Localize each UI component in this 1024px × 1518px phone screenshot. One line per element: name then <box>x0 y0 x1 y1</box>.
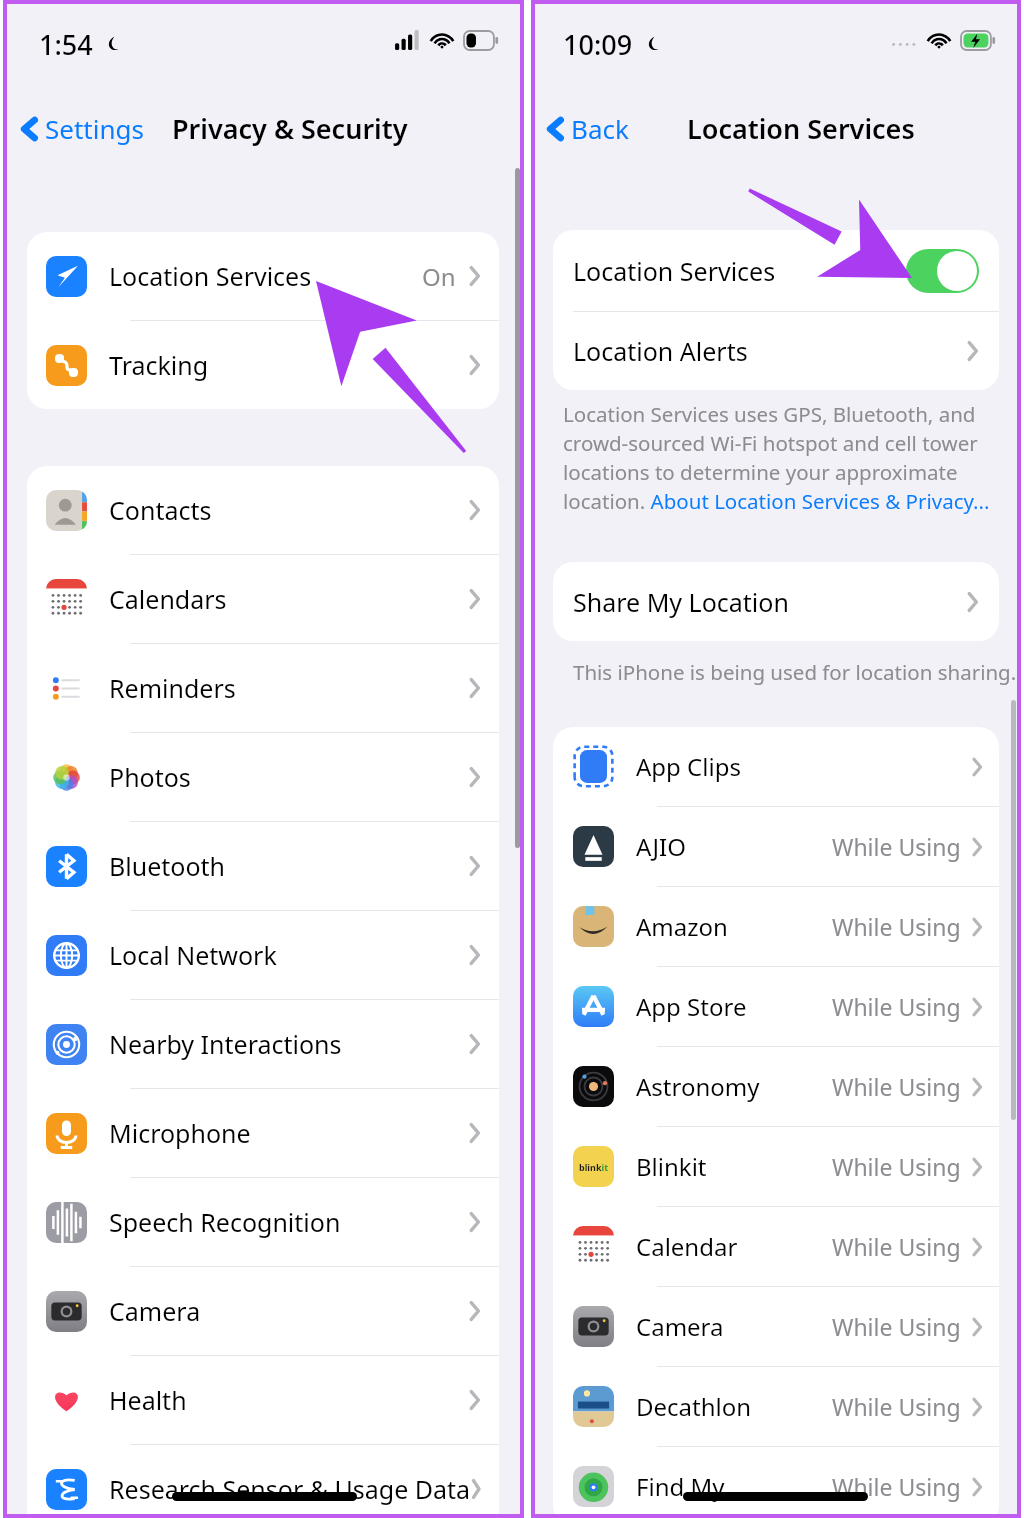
button[interactable]: Reminders <box>27 644 499 732</box>
staticText: Camera <box>109 1294 201 1328</box>
button[interactable]: Location Services toggle, on <box>906 249 979 293</box>
button[interactable]: Calendars <box>27 555 499 643</box>
staticText: App Store <box>636 990 747 1023</box>
button[interactable]: Find My <box>553 1447 999 1518</box>
button[interactable]: Nearby Interactions <box>27 1000 499 1088</box>
staticText: Amazon <box>636 910 728 943</box>
staticText: While Using <box>832 1071 961 1102</box>
staticText: While Using <box>832 831 961 862</box>
button[interactable]: Back <box>539 105 635 152</box>
staticText: While Using <box>832 1311 961 1342</box>
staticText: While Using <box>832 991 961 1022</box>
button[interactable]: Decathlon <box>553 1367 999 1446</box>
button[interactable]: Camera <box>27 1267 499 1355</box>
button[interactable]: Photos <box>27 733 499 821</box>
staticText: Contacts <box>109 493 212 527</box>
staticText: Location Services <box>109 259 312 293</box>
staticText: App Clips <box>636 750 741 783</box>
button[interactable]: Location Alerts <box>553 312 999 390</box>
staticText: Astronomy <box>636 1070 760 1103</box>
staticText: While Using <box>832 1231 961 1262</box>
button[interactable]: Contacts <box>27 466 499 554</box>
staticText: This iPhone is being used for location s… <box>573 658 1017 686</box>
button[interactable]: Tracking <box>27 321 499 409</box>
staticText: Speech Recognition <box>109 1205 341 1239</box>
button[interactable]: Bluetooth <box>27 822 499 910</box>
staticText: Photos <box>109 760 191 794</box>
button[interactable]: Amazon <box>553 887 999 966</box>
button[interactable]: blinkit <box>553 1127 999 1206</box>
staticText: On <box>422 260 456 293</box>
staticText: Nearby Interactions <box>109 1027 342 1061</box>
staticText: Research Sensor & Usage Data <box>109 1472 471 1506</box>
staticText: Decathlon <box>636 1390 752 1423</box>
button[interactable]: Location Services <box>27 232 499 320</box>
staticText: Local Network <box>109 938 277 972</box>
staticText: Health <box>109 1383 187 1417</box>
staticText: Microphone <box>109 1116 251 1150</box>
staticText: Privacy & Security <box>172 110 408 147</box>
staticText: Find My <box>636 1470 725 1503</box>
button[interactable]: Health <box>27 1356 499 1444</box>
staticText: Location Alerts <box>573 334 748 368</box>
button[interactable]: Location Services <box>553 230 999 311</box>
button[interactable]: App Clips <box>553 727 999 806</box>
staticText: 1:54 <box>39 26 93 63</box>
button[interactable]: Microphone <box>27 1089 499 1177</box>
staticText: While Using <box>832 1471 961 1502</box>
staticText: Calendars <box>109 582 227 616</box>
button[interactable]: Local Network <box>27 911 499 999</box>
staticText: Reminders <box>109 671 236 705</box>
staticText: Camera <box>636 1310 724 1343</box>
button[interactable]: Astronomy <box>553 1047 999 1126</box>
button[interactable]: AJIO <box>553 807 999 886</box>
staticText: Calendar <box>636 1230 738 1263</box>
button[interactable]: Camera <box>553 1287 999 1366</box>
button[interactable]: Settings <box>13 105 150 152</box>
staticText: 10:09 <box>563 26 633 63</box>
staticText: Back <box>571 111 629 146</box>
staticText: Location Services <box>573 254 776 288</box>
button[interactable]: Speech Recognition <box>27 1178 499 1266</box>
button[interactable]: Research Sensor & Usage Data <box>27 1445 499 1518</box>
staticText: Settings <box>45 111 144 146</box>
staticText: AJIO <box>636 830 686 863</box>
button[interactable]: Share My Location <box>553 562 999 641</box>
staticText: blinkit <box>579 1161 609 1173</box>
staticText: While Using <box>832 1391 961 1422</box>
staticText: Tracking <box>109 348 209 382</box>
staticText: While Using <box>832 1151 961 1182</box>
button[interactable]: App Store <box>553 967 999 1046</box>
staticText: While Using <box>832 911 961 942</box>
staticText: Bluetooth <box>109 849 226 883</box>
button[interactable]: Calendar <box>553 1207 999 1286</box>
staticText: Share My Location <box>573 585 789 619</box>
staticText: Blinkit <box>636 1150 707 1183</box>
staticText: Location Services uses GPS, Bluetooth, a… <box>563 400 993 515</box>
staticText: Location Services <box>687 110 915 147</box>
